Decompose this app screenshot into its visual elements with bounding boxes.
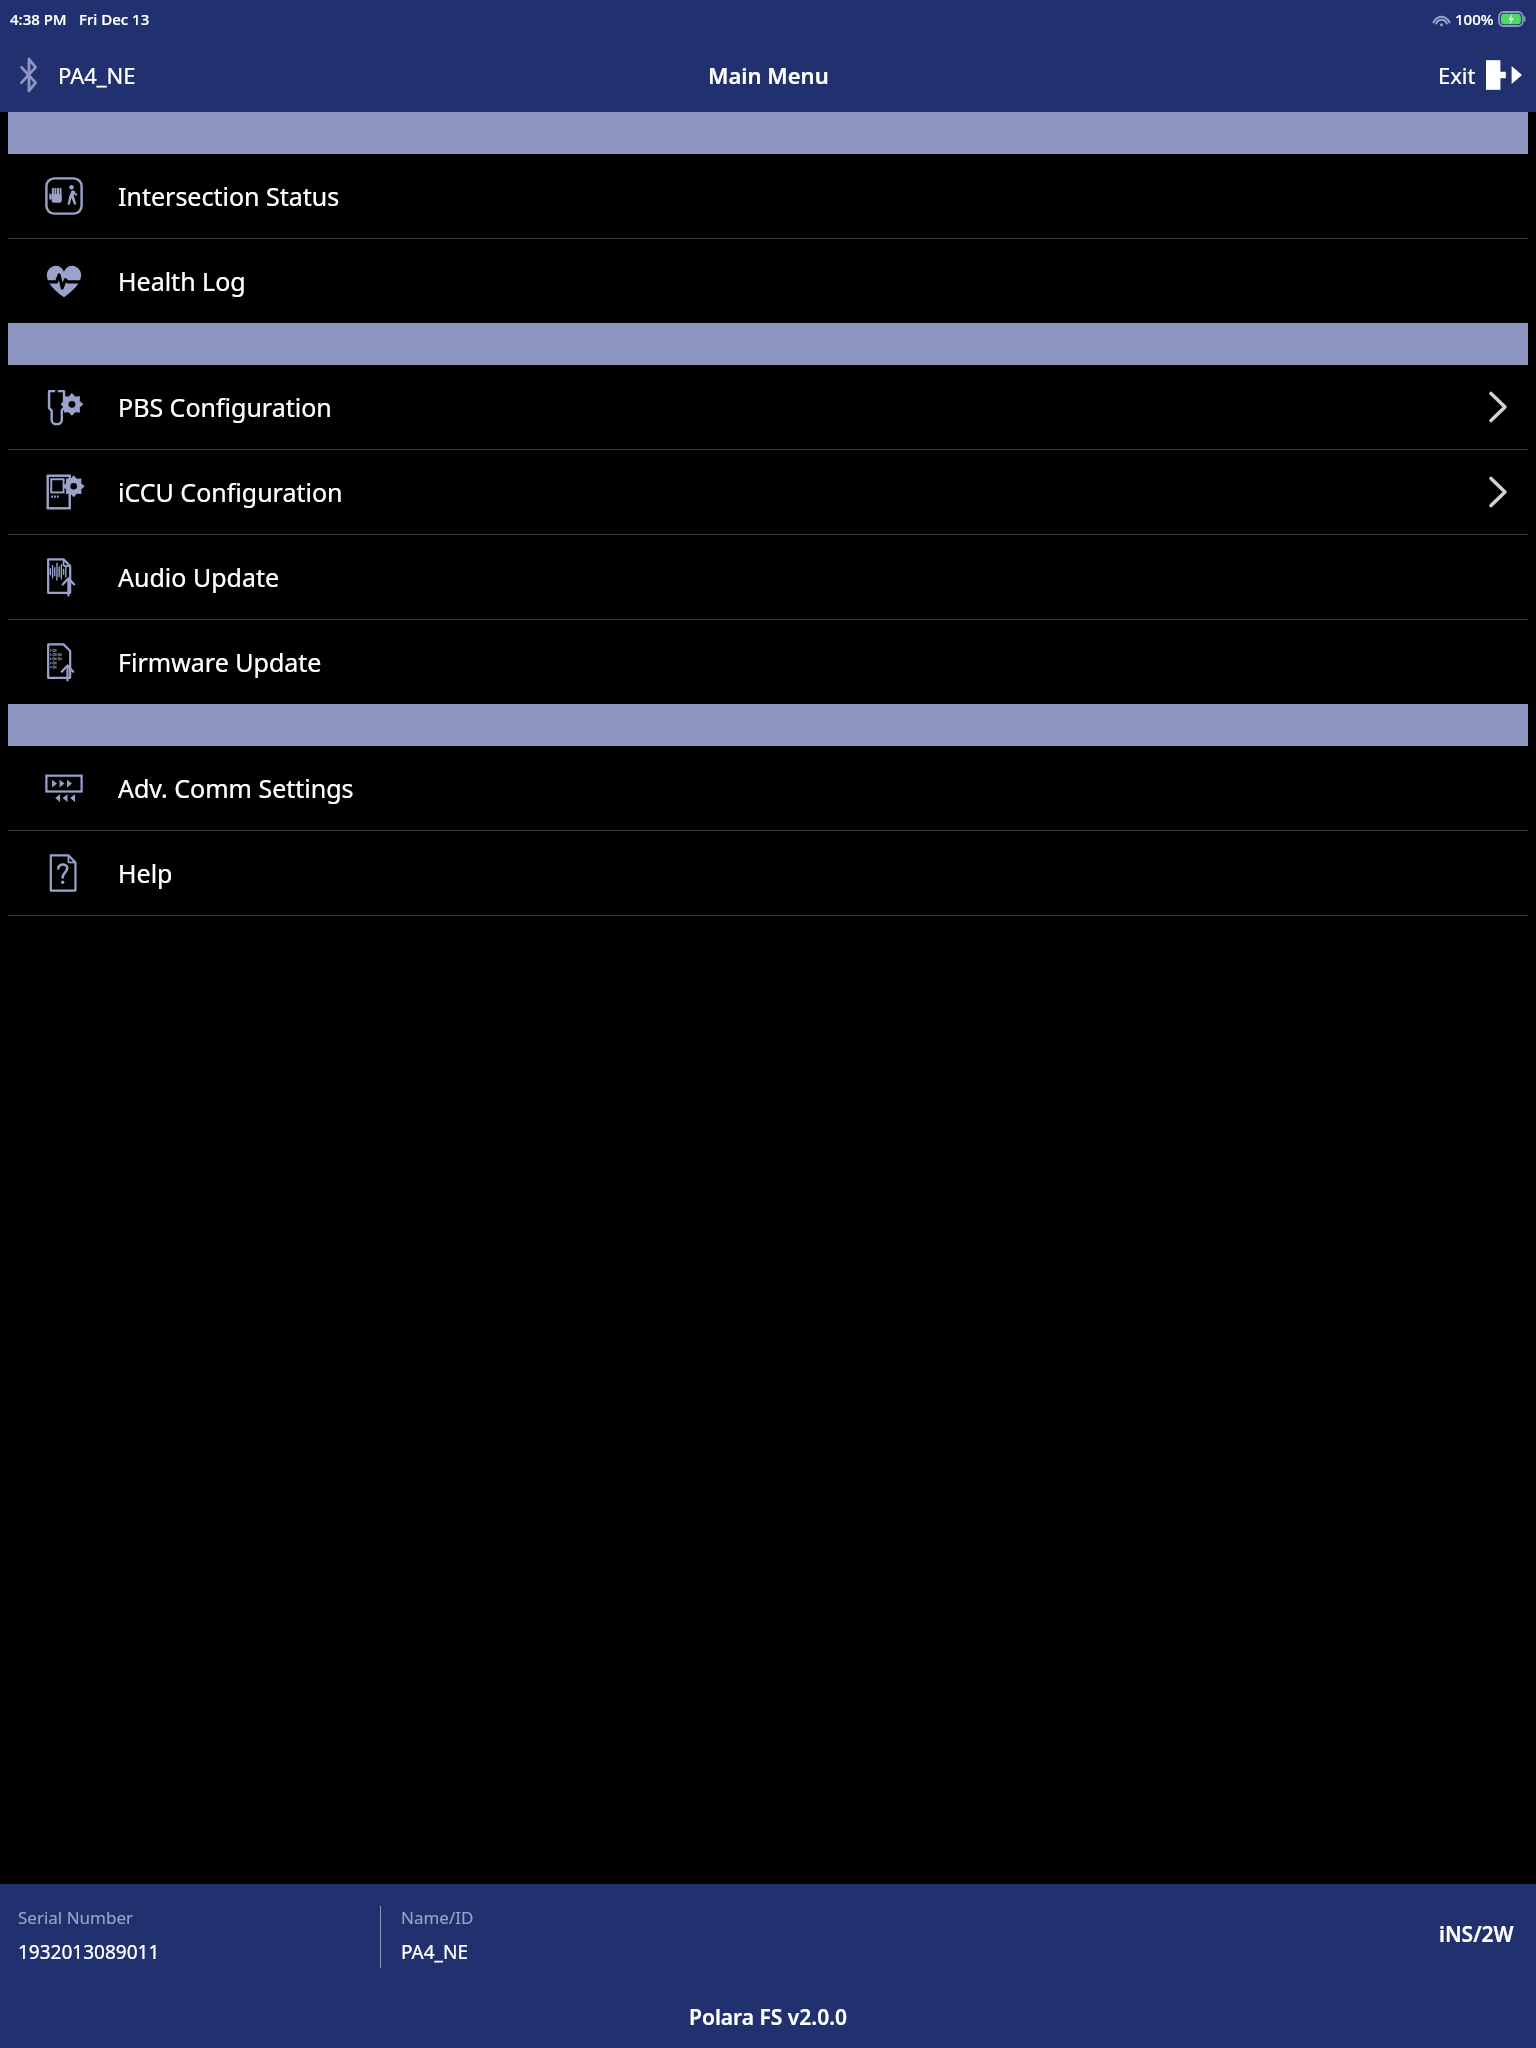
button[interactable]: Firmware Update (0, 620, 1536, 704)
button[interactable]: Audio Update (0, 535, 1536, 619)
staticText: Audio Update (118, 560, 280, 594)
staticText: PBS Configuration (118, 390, 332, 424)
staticText: Help (118, 856, 173, 890)
button[interactable]: iCCU Configuration (0, 450, 1536, 534)
staticText: 100% (1455, 9, 1494, 29)
staticText: Adv. Comm Settings (118, 771, 354, 805)
button[interactable]: Intersection Status (0, 154, 1536, 238)
staticText: Firmware Update (118, 645, 322, 679)
staticText: Fri Dec 13 (79, 9, 150, 29)
staticText: Exit (1438, 60, 1476, 90)
other: Bluetooth (18, 56, 40, 94)
staticText: 4:38 PM (10, 9, 67, 29)
staticText: 1932013089011 (18, 1939, 160, 1965)
button[interactable]: PBS Configuration (0, 365, 1536, 449)
button[interactable]: Bluetooth (18, 56, 136, 94)
button[interactable]: Adv. Comm Settings (0, 746, 1536, 830)
staticText: Health Log (118, 264, 246, 298)
staticText: iCCU Configuration (118, 475, 343, 509)
button[interactable]: Health Log (0, 239, 1536, 323)
staticText: Name/ID (401, 1906, 474, 1929)
staticText: Main Menu (708, 60, 829, 90)
staticText: Intersection Status (118, 179, 340, 213)
button[interactable]: Help (0, 831, 1536, 915)
staticText: PA4_NE (58, 60, 136, 90)
staticText: Polara FS v2.0.0 (689, 2003, 847, 2032)
staticText: PA4_NE (401, 1939, 468, 1965)
staticText: Serial Number (18, 1906, 134, 1929)
button[interactable]: Exit (1438, 56, 1522, 94)
staticText: iNS/2W (1439, 1920, 1514, 1949)
